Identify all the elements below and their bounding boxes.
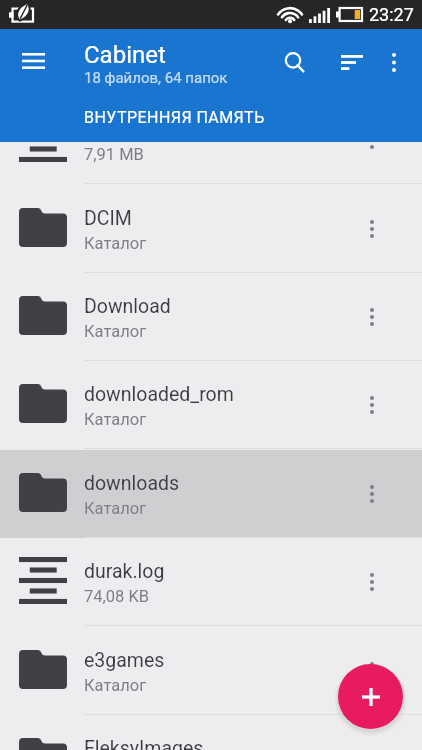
- button[interactable]: Add: [338, 664, 403, 729]
- button[interactable]: More options: [354, 122, 390, 158]
- button[interactable]: FleksyImages: [0, 715, 422, 750]
- button[interactable]: More options: [354, 211, 390, 247]
- button[interactable]: Sort: [329, 40, 374, 85]
- button[interactable]: ВНУТРЕННЯЯ ПАМЯТЬ: [84, 95, 265, 139]
- button[interactable]: More options: [354, 564, 390, 600]
- button[interactable]: More options: [371, 40, 416, 85]
- button[interactable]: More options: [354, 476, 390, 512]
- staticText: Каталог: [84, 676, 147, 695]
- button[interactable]: More options: [354, 653, 390, 689]
- staticText: Каталог: [84, 322, 147, 341]
- staticText: 74,08 KB: [84, 587, 150, 606]
- staticText: Каталог: [84, 499, 147, 518]
- button[interactable]: durak0.log: [0, 96, 422, 184]
- staticText: Каталог: [84, 234, 147, 253]
- button[interactable]: downloads: [0, 450, 422, 538]
- button[interactable]: downloaded_rom: [0, 361, 422, 449]
- staticText: 23:27: [369, 4, 414, 25]
- button[interactable]: durak.log: [0, 538, 422, 626]
- staticText: ВНУТРЕННЯЯ ПАМЯТЬ: [84, 108, 265, 127]
- staticText: e3games: [84, 649, 165, 672]
- staticText: downloads: [84, 472, 180, 495]
- button[interactable]: More options: [354, 299, 390, 335]
- button[interactable]: Download: [0, 273, 422, 361]
- button[interactable]: e3games: [0, 627, 422, 715]
- staticText: downloaded_rom: [84, 383, 234, 406]
- staticText: DCIM: [84, 207, 132, 230]
- button[interactable]: DCIM: [0, 185, 422, 273]
- button[interactable]: More options: [354, 387, 390, 423]
- staticText: Каталог: [84, 410, 147, 429]
- staticText: Download: [84, 295, 171, 318]
- button[interactable]: Search: [272, 40, 317, 85]
- button[interactable]: Open navigation drawer: [9, 37, 57, 85]
- staticText: Cabinet: [84, 41, 166, 69]
- staticText: 7,91 MB: [84, 145, 144, 164]
- staticText: 18 файлов, 64 папок: [84, 69, 228, 87]
- staticText: durak0.log: [84, 118, 176, 141]
- staticText: durak.log: [84, 560, 165, 583]
- staticText: FleksyImages: [84, 737, 204, 750]
